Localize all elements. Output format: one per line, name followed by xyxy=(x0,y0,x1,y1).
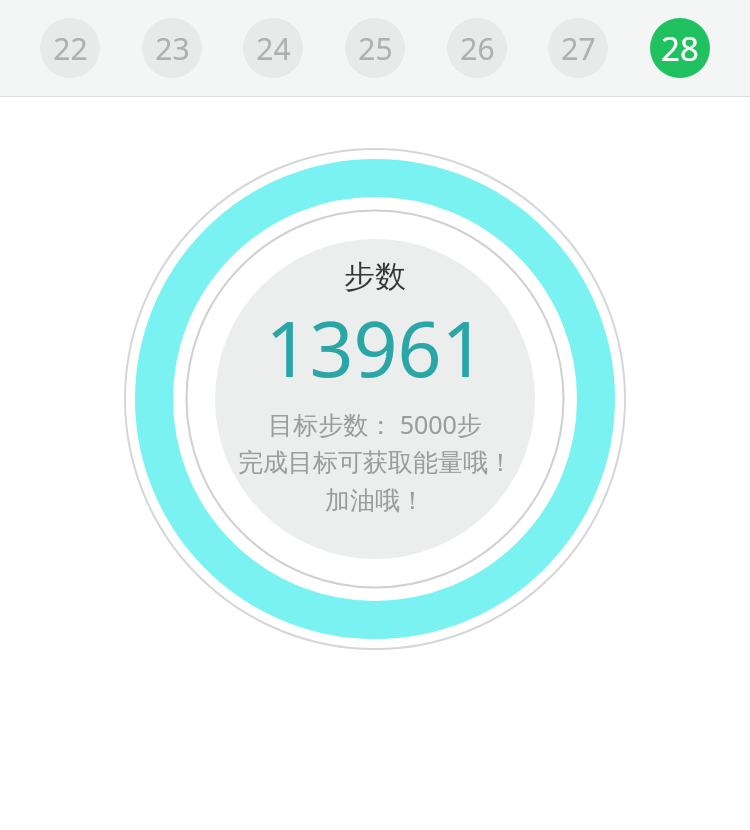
staticText: 24 xyxy=(256,28,291,69)
staticText: 步数 xyxy=(344,257,406,296)
button[interactable]: 25 xyxy=(345,18,405,78)
button[interactable]: 26 xyxy=(447,18,507,78)
button[interactable]: 27 xyxy=(548,18,608,78)
staticText: 完成目标可获取能量哦！ xyxy=(238,447,513,478)
button[interactable]: 23 xyxy=(142,18,202,78)
staticText: 13961 xyxy=(265,295,486,400)
button[interactable]: 22 xyxy=(40,18,100,78)
button[interactable]: 28 xyxy=(650,18,710,78)
staticText: 22 xyxy=(53,28,88,69)
staticText: 28 xyxy=(661,26,699,71)
staticText: 目标步数： 5000步 xyxy=(268,407,482,441)
staticText: 加油哦！ xyxy=(325,485,425,516)
staticText: 23 xyxy=(155,28,190,69)
staticText: 26 xyxy=(460,28,495,69)
staticText: 25 xyxy=(358,28,393,69)
button[interactable]: 24 xyxy=(243,18,303,78)
staticText: 27 xyxy=(561,28,596,69)
